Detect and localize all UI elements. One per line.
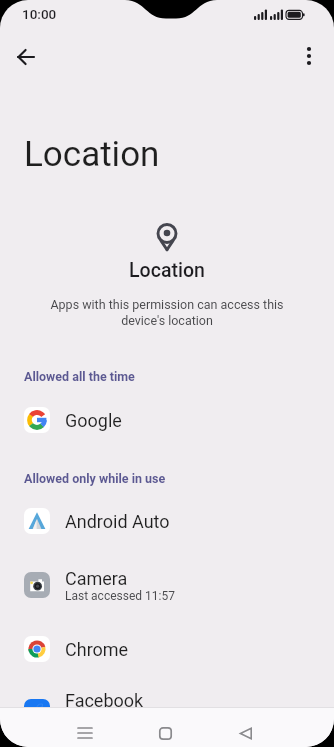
staticText: Apps with this permission can access thi… (50, 297, 284, 328)
staticText: Camera (65, 568, 128, 589)
staticText: Location (129, 259, 205, 282)
button[interactable]: Camera (0, 563, 334, 607)
staticText: Facebook (65, 690, 144, 711)
staticText: Android Auto (65, 511, 170, 532)
button[interactable] (69, 717, 101, 747)
button[interactable] (292, 39, 326, 73)
button[interactable]: Android Auto (0, 501, 334, 541)
staticText: Location (24, 134, 160, 175)
button[interactable]: Google (0, 400, 334, 440)
staticText: 10:00 (22, 6, 57, 22)
button[interactable] (229, 717, 261, 747)
button[interactable]: Facebook (0, 688, 334, 730)
staticText: Google (65, 410, 122, 431)
button[interactable] (149, 717, 181, 747)
staticText: Last accessed 11:57 (65, 589, 175, 603)
staticText: Allowed only while in use (24, 471, 166, 486)
staticText: Chrome (65, 639, 129, 660)
staticText: Allowed all the time (24, 369, 135, 384)
button[interactable]: Chrome (0, 629, 334, 669)
button[interactable] (10, 41, 42, 73)
